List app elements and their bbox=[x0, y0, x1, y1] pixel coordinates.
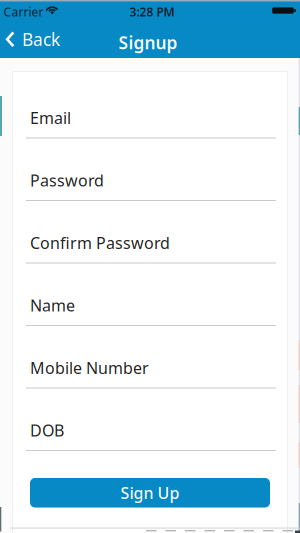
button[interactable]: Back bbox=[6, 21, 60, 57]
staticText: Back bbox=[22, 28, 60, 51]
staticText: 3:28 PM bbox=[129, 4, 174, 20]
button[interactable]: Sign Up bbox=[30, 478, 270, 507]
staticText: Email bbox=[30, 107, 71, 128]
staticText: Signup bbox=[118, 31, 177, 54]
staticText: DOB bbox=[30, 420, 64, 441]
button[interactable]: Mobile Number bbox=[26, 344, 276, 388]
button[interactable]: Password bbox=[26, 157, 276, 201]
staticText: Sign Up bbox=[120, 482, 179, 503]
staticText: Confirm Password bbox=[30, 232, 170, 253]
staticText: Name bbox=[30, 295, 75, 316]
button[interactable]: Confirm Password bbox=[26, 219, 276, 263]
button[interactable]: Name bbox=[26, 282, 276, 326]
staticText: Mobile Number bbox=[30, 357, 149, 378]
staticText: Carrier bbox=[3, 4, 43, 20]
staticText: Password bbox=[30, 170, 104, 191]
button[interactable]: Email bbox=[26, 94, 276, 138]
button[interactable]: DOB bbox=[26, 407, 276, 451]
